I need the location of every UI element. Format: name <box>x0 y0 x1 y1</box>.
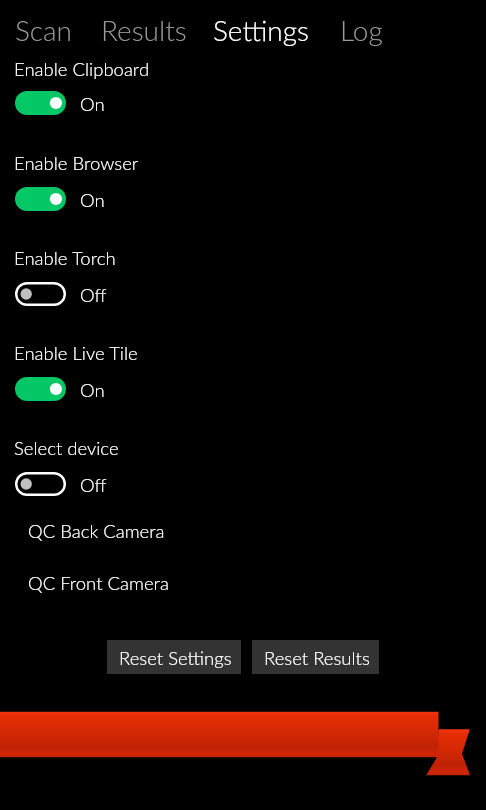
staticText: Off <box>80 474 107 496</box>
button[interactable]: On <box>14 375 129 403</box>
staticText: Enable Torch <box>14 247 116 269</box>
button[interactable]: Scan <box>15 13 72 47</box>
staticText: QC Front Camera <box>28 572 169 594</box>
staticText: Reset Settings <box>119 647 232 669</box>
button[interactable]: Off <box>14 280 129 308</box>
staticText: Results <box>101 13 187 47</box>
button[interactable]: On <box>14 89 129 117</box>
button[interactable]: Select device <box>14 437 119 459</box>
staticText: On <box>80 93 105 115</box>
staticText: Off <box>80 284 107 306</box>
staticText: Enable Live Tile <box>14 342 138 364</box>
button[interactable]: Reset Settings <box>107 640 241 674</box>
staticText: Settings <box>213 13 309 47</box>
button[interactable]: Reset Results <box>252 640 379 674</box>
staticText: On <box>80 379 105 401</box>
staticText: Reset Results <box>264 647 370 669</box>
button[interactable]: Enable Clipboard <box>14 58 150 80</box>
button[interactable]: Enable Browser <box>14 152 139 174</box>
staticText: Enable Clipboard <box>14 58 150 80</box>
button[interactable]: Enable Live Tile <box>14 342 138 364</box>
button[interactable]: QC Front Camera <box>28 572 169 596</box>
button[interactable]: On <box>14 185 129 213</box>
staticText: QC Back Camera <box>28 520 165 542</box>
staticText: Select device <box>14 437 119 459</box>
button[interactable]: QC Back Camera <box>28 520 165 544</box>
staticText: Log <box>340 13 383 47</box>
button[interactable]: Enable Torch <box>14 247 116 269</box>
button[interactable]: Off <box>14 470 129 498</box>
staticText: On <box>80 189 105 211</box>
button[interactable]: Results <box>101 13 187 47</box>
button[interactable]: Settings <box>213 13 309 47</box>
staticText: Enable Browser <box>14 152 139 174</box>
button[interactable]: Log <box>340 13 383 47</box>
staticText: Scan <box>15 13 72 47</box>
